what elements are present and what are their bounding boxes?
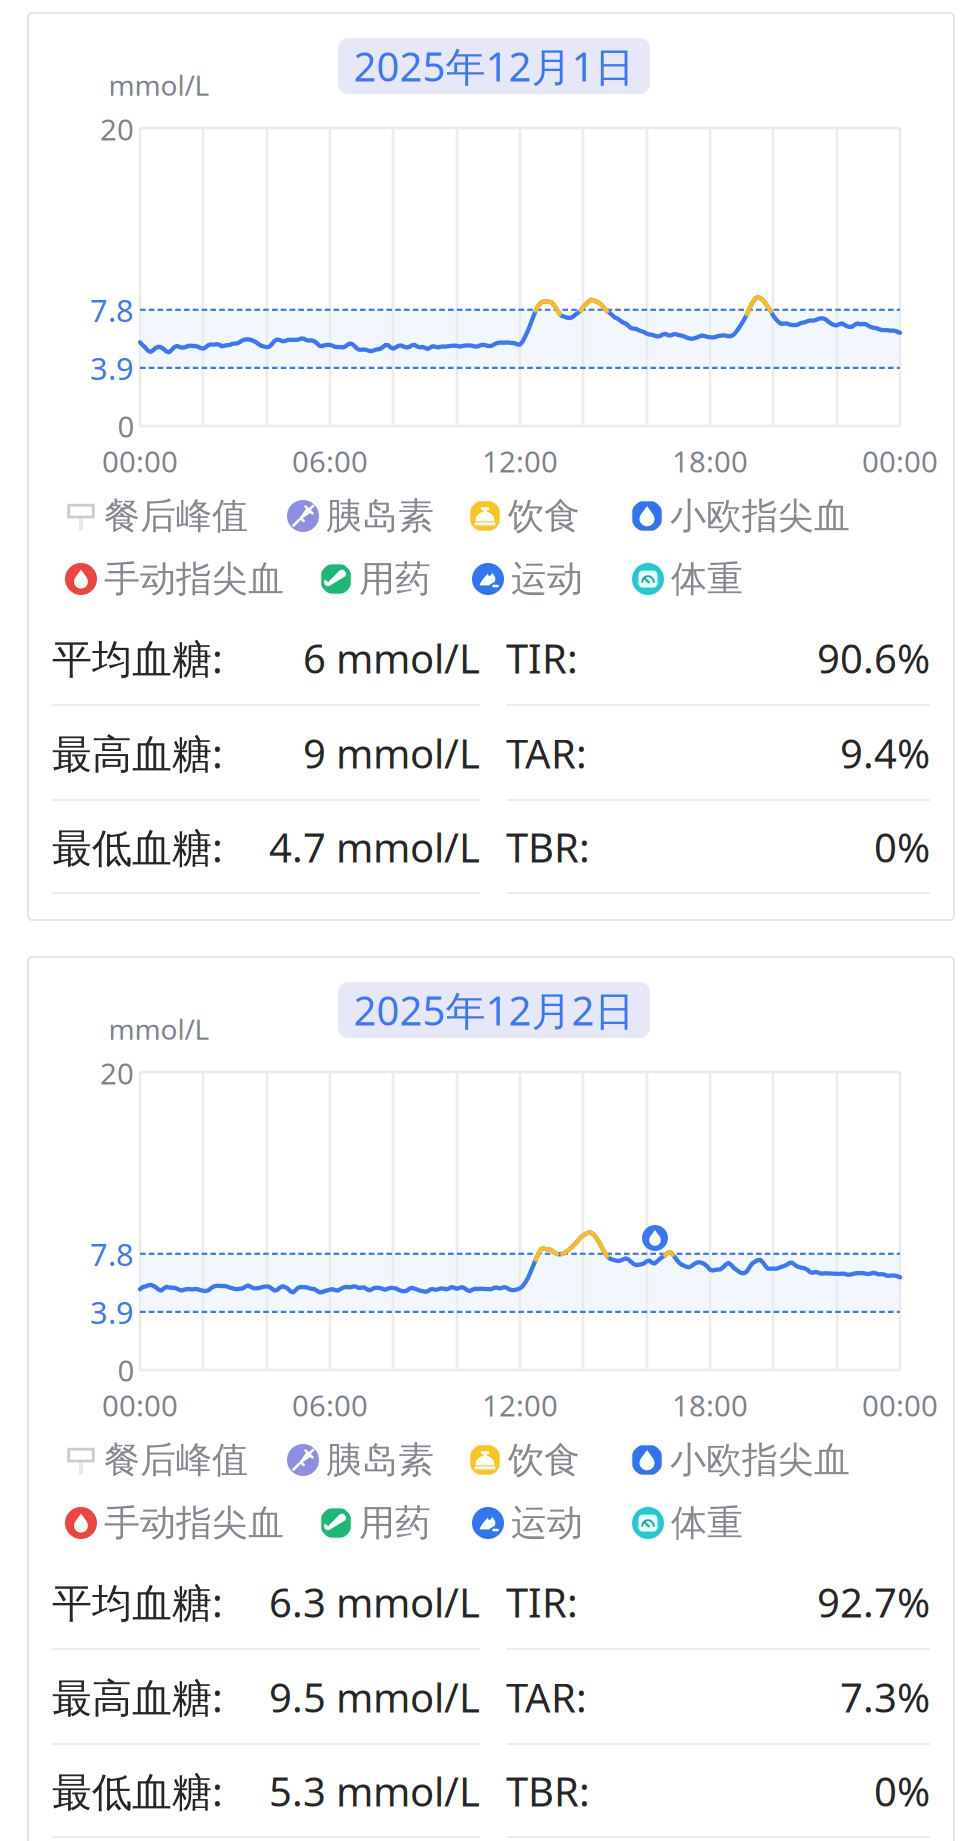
staticText: 5.3 mmol/L [269,1764,480,1817]
button[interactable]: 用药 [320,557,660,601]
staticText: 3.9 [90,1292,134,1332]
button[interactable]: 手动指尖血 [65,557,405,601]
staticText: 最高血糖: [52,726,223,779]
staticText: mmol/L [108,1010,209,1048]
staticText: 00:00 [102,441,178,480]
staticText: 00:00 [862,1385,938,1424]
button[interactable]: 饮食 [469,494,809,538]
button[interactable]: 胰岛素 [287,494,627,538]
staticText: 18:00 [672,1385,748,1424]
staticText: 20 [100,109,134,148]
staticText: 0% [874,1764,930,1817]
button[interactable]: 小欧指尖血 [631,1438,971,1482]
button[interactable]: 胰岛素 [287,1438,627,1482]
staticText: 06:00 [292,441,368,480]
staticText: 2025年12月2日 [353,983,634,1036]
staticText: 9 mmol/L [303,726,480,779]
staticText: 运动 [511,1501,583,1545]
staticText: 0 [117,1350,134,1389]
staticText: 用药 [359,1501,431,1545]
staticText: mmol/L [108,66,209,104]
staticText: TIR: [506,631,578,684]
button[interactable]: 手动指尖血 [65,1501,405,1545]
staticText: 9.4% [840,726,930,779]
button[interactable]: 体重 [632,557,972,601]
button[interactable]: 餐后峰值 [65,1438,405,1482]
staticText: 7.3% [840,1670,930,1723]
staticText: 手动指尖血 [104,557,284,601]
staticText: 6 mmol/L [303,631,480,684]
button[interactable]: 小欧指尖血 [631,494,971,538]
button[interactable]: 2025年12月1日 [338,38,650,94]
staticText: 平均血糖: [52,1575,223,1628]
staticText: 体重 [671,557,743,601]
staticText: 餐后峰值 [104,494,248,538]
staticText: TAR: [506,726,587,779]
staticText: TBR: [506,820,590,873]
staticText: 00:00 [102,1385,178,1424]
staticText: 最低血糖: [52,1764,223,1817]
staticText: 18:00 [672,441,748,480]
staticText: 饮食 [508,494,580,538]
staticText: 00:00 [862,441,938,480]
staticText: TIR: [506,1575,578,1628]
staticText: 6.3 mmol/L [269,1575,480,1628]
staticText: 小欧指尖血 [670,494,850,538]
staticText: 7.8 [90,1234,134,1274]
staticText: 手动指尖血 [104,1501,284,1545]
button[interactable]: 体重 [632,1501,972,1545]
staticText: 06:00 [292,1385,368,1424]
staticText: 胰岛素 [326,1438,434,1482]
staticText: 3.9 [90,348,134,388]
staticText: 用药 [359,557,431,601]
staticText: 4.7 mmol/L [269,820,480,873]
staticText: 12:00 [482,441,558,480]
button[interactable]: 用药 [320,1501,660,1545]
button[interactable]: 运动 [472,1501,812,1545]
staticText: 0% [874,820,930,873]
staticText: 2025年12月1日 [353,39,634,92]
button[interactable]: 饮食 [469,1438,809,1482]
staticText: TAR: [506,1670,587,1723]
button[interactable]: 餐后峰值 [65,494,405,538]
staticText: TBR: [506,1764,590,1817]
staticText: 最高血糖: [52,1670,223,1723]
staticText: 9.5 mmol/L [269,1670,480,1723]
staticText: 餐后峰值 [104,1438,248,1482]
staticText: 0 [117,406,134,445]
staticText: 运动 [511,557,583,601]
staticText: 胰岛素 [326,494,434,538]
staticText: 12:00 [482,1385,558,1424]
button[interactable]: 2025年12月2日 [338,982,650,1038]
button[interactable]: 运动 [472,557,812,601]
staticText: 90.6% [817,631,930,684]
staticText: 平均血糖: [52,631,223,684]
staticText: 小欧指尖血 [670,1438,850,1482]
staticText: 体重 [671,1501,743,1545]
staticText: 饮食 [508,1438,580,1482]
staticText: 最低血糖: [52,820,223,873]
staticText: 92.7% [817,1575,930,1628]
staticText: 20 [100,1053,134,1092]
staticText: 7.8 [90,290,134,330]
